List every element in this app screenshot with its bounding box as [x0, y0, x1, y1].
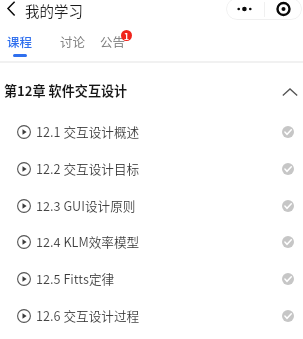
button[interactable]: 12.3 GUI设计原则	[0, 187, 303, 224]
button[interactable]: Back	[1, 0, 23, 22]
button[interactable]: 公告	[100, 28, 126, 54]
button[interactable]: 课程	[7, 28, 33, 57]
button[interactable]: 12.2 交互设计目标	[0, 150, 303, 187]
staticText: 公告	[100, 32, 126, 50]
staticText: 第12章 软件交互设计	[4, 81, 128, 100]
button[interactable]: 12.5 Fitts定律	[0, 260, 303, 297]
staticText: 12.6 交互设计过程	[36, 306, 140, 324]
staticText: 12.4 KLM效率模型	[36, 232, 140, 250]
staticText: 12.5 Fitts定律	[36, 269, 115, 287]
staticText: 课程	[7, 32, 33, 50]
button[interactable]: 12.1 交互设计概述	[0, 113, 303, 150]
button[interactable]: 12.4 KLM效率模型	[0, 223, 303, 260]
button[interactable]: More options	[226, 0, 264, 20]
staticText: 12.3 GUI设计原则	[36, 196, 136, 214]
staticText: 12.2 交互设计目标	[36, 159, 140, 177]
staticText: 讨论	[60, 32, 86, 50]
staticText: 1	[124, 30, 129, 41]
button[interactable]: Close	[264, 0, 302, 20]
button[interactable]: 讨论	[60, 28, 86, 54]
staticText: 我的学习	[25, 0, 83, 21]
staticText: 12.1 交互设计概述	[36, 122, 140, 140]
button[interactable]: 第12章 软件交互设计	[0, 74, 303, 109]
button[interactable]: 12.6 交互设计过程	[0, 297, 303, 334]
